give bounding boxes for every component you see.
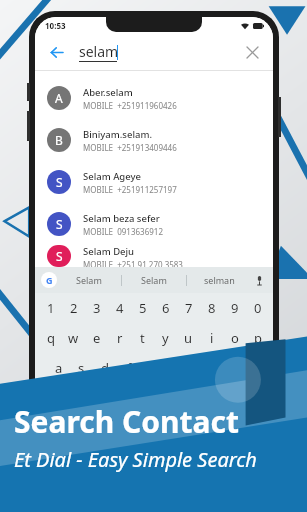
button[interactable]: 4: [108, 293, 131, 323]
staticText: 10:53: [45, 20, 66, 31]
button[interactable]: d: [93, 353, 117, 383]
button[interactable]: m: [213, 383, 243, 413]
staticText: Aber.selam: [83, 86, 133, 99]
button[interactable]: e: [85, 323, 108, 353]
staticText: MOBILE +251 91 270 3583: [83, 259, 183, 267]
staticText: q: [47, 329, 55, 347]
staticText: u: [184, 329, 193, 347]
button[interactable]: t: [131, 323, 154, 353]
staticText: Et Dial - Easy Simple Search: [14, 446, 257, 473]
button[interactable]: n: [183, 383, 213, 413]
staticText: g: [149, 359, 157, 377]
button[interactable]: S: [35, 245, 273, 267]
button[interactable]: Clear: [241, 41, 263, 63]
button[interactable]: 7: [177, 293, 200, 323]
button[interactable]: B: [35, 119, 273, 161]
staticText: G: [46, 274, 53, 286]
button[interactable]: 8: [200, 293, 223, 323]
button[interactable]: u: [177, 323, 200, 353]
button[interactable]: f: [117, 353, 141, 383]
button[interactable]: v: [123, 383, 153, 413]
button[interactable]: selman: [187, 267, 251, 293]
staticText: w: [68, 329, 79, 347]
staticText: 5: [139, 299, 147, 317]
button[interactable]: Selam: [57, 267, 121, 293]
button[interactable]: Backspace: [243, 383, 269, 413]
staticText: 8: [208, 299, 216, 317]
staticText: B: [55, 132, 63, 148]
staticText: 1: [47, 299, 55, 317]
staticText: S: [56, 216, 63, 232]
staticText: 3: [93, 299, 101, 317]
staticText: b: [164, 389, 172, 407]
button[interactable]: s: [70, 353, 93, 383]
button[interactable]: h: [165, 353, 189, 383]
staticText: Selam Ageye: [83, 170, 141, 183]
button[interactable]: 3: [85, 293, 108, 323]
button[interactable]: Back: [45, 41, 67, 63]
staticText: selman: [204, 274, 235, 286]
staticText: A: [55, 90, 63, 106]
button[interactable]: A: [35, 77, 273, 119]
button[interactable]: w: [62, 323, 85, 353]
button[interactable]: 6: [154, 293, 177, 323]
button[interactable]: c: [92, 383, 123, 413]
staticText: t: [140, 329, 145, 347]
button[interactable]: Voice input: [251, 272, 267, 288]
button[interactable]: S: [35, 161, 273, 203]
button[interactable]: p: [246, 323, 269, 353]
button[interactable]: o: [223, 323, 246, 353]
button[interactable]: b: [153, 383, 183, 413]
button[interactable]: x: [61, 383, 92, 413]
button[interactable]: 0: [246, 293, 269, 323]
staticText: S: [56, 248, 63, 264]
button[interactable]: g: [141, 353, 165, 383]
staticText: MOBILE 0913636912: [83, 226, 163, 237]
staticText: e: [93, 329, 101, 347]
staticText: l: [247, 359, 251, 377]
staticText: S: [56, 174, 63, 190]
staticText: k: [222, 359, 229, 377]
staticText: 0: [254, 299, 262, 317]
button[interactable]: 2: [62, 293, 85, 323]
staticText: Selam: [76, 274, 102, 286]
staticText: i: [210, 329, 214, 347]
staticText: y: [162, 329, 169, 347]
button[interactable]: selam: [79, 42, 241, 62]
staticText: selam: [79, 42, 119, 61]
button[interactable]: 1: [39, 293, 62, 323]
button[interactable]: 9: [223, 293, 246, 323]
button[interactable]: j: [189, 353, 213, 383]
staticText: MOBILE +251911257197: [83, 184, 177, 195]
staticText: Selam: [141, 274, 167, 286]
button[interactable]: k: [213, 353, 237, 383]
button[interactable]: Google: [41, 272, 57, 288]
staticText: 6: [162, 299, 170, 317]
button[interactable]: S: [35, 203, 273, 245]
staticText: 7: [185, 299, 193, 317]
staticText: 9: [231, 299, 239, 317]
staticText: MOBILE +251911960426: [83, 100, 177, 111]
button[interactable]: y: [154, 323, 177, 353]
staticText: 4: [116, 299, 124, 317]
button[interactable]: 5: [131, 293, 154, 323]
button[interactable]: q: [39, 323, 62, 353]
button[interactable]: l: [237, 353, 261, 383]
staticText: Selam beza sefer: [83, 212, 160, 225]
staticText: MOBILE +251913409446: [83, 142, 177, 153]
staticText: f: [127, 359, 132, 377]
staticText: s: [78, 359, 85, 377]
button[interactable]: Selam: [122, 267, 186, 293]
staticText: v: [135, 389, 142, 407]
button[interactable]: a: [47, 353, 70, 383]
staticText: c: [104, 389, 111, 407]
button[interactable]: i: [200, 323, 223, 353]
staticText: Selam Deju: [83, 245, 135, 258]
staticText: 2: [70, 299, 78, 317]
button[interactable]: r: [108, 323, 131, 353]
staticText: d: [101, 359, 109, 377]
